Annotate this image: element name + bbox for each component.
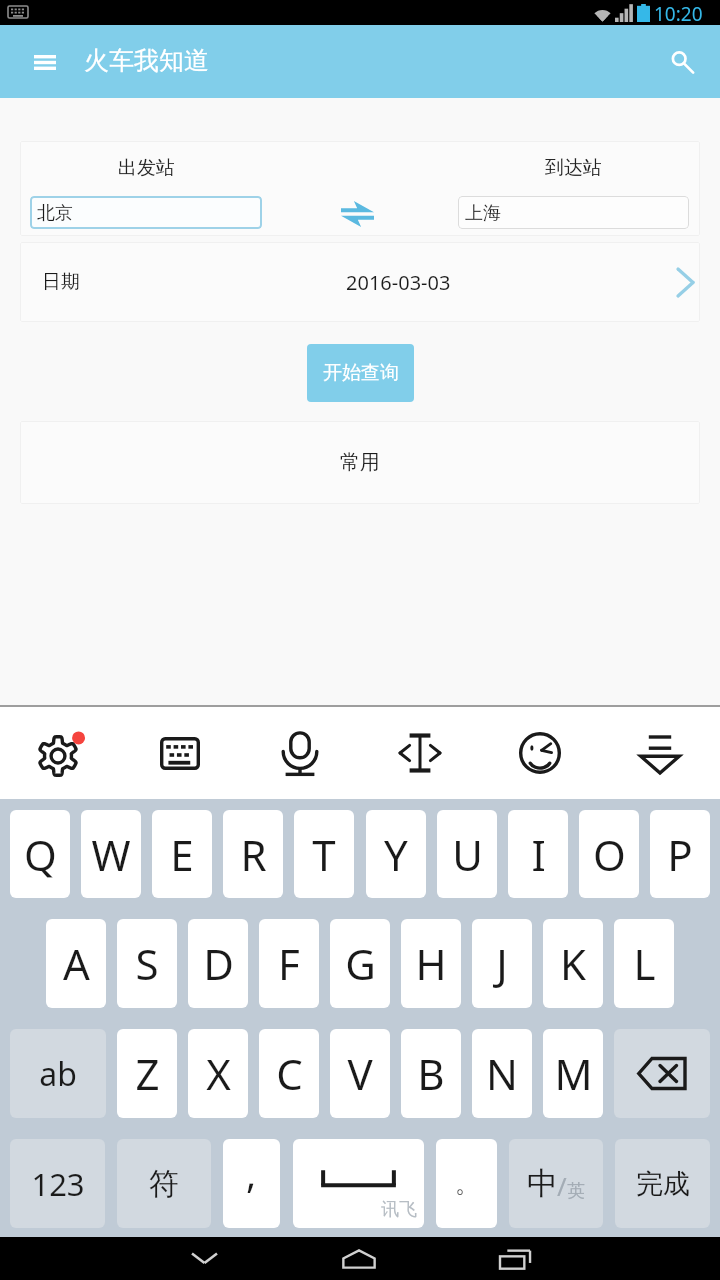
button[interactable]: F	[259, 919, 319, 1008]
staticText: Z	[135, 1045, 160, 1102]
button[interactable]: N	[472, 1029, 532, 1118]
button[interactable]: Voice input	[240, 707, 360, 799]
button[interactable]: 开始查询	[307, 344, 414, 402]
staticText: L	[633, 935, 656, 992]
button[interactable]: Home	[335, 1237, 383, 1280]
staticText: 常用	[340, 450, 380, 475]
staticText: 123	[31, 1163, 85, 1205]
button[interactable]: 完成	[615, 1139, 710, 1228]
button[interactable]: 上海	[458, 196, 689, 229]
staticText: F	[278, 935, 300, 992]
staticText: 日期	[42, 270, 80, 294]
button[interactable]: Cursor	[360, 707, 480, 799]
staticText: /	[557, 1168, 567, 1203]
button[interactable]: K	[543, 919, 603, 1008]
staticText: T	[312, 826, 336, 883]
staticText: 火车我知道	[84, 45, 209, 76]
staticText: 北京	[37, 202, 73, 225]
button[interactable]: 常用	[20, 421, 700, 504]
button[interactable]: Swap stations	[334, 191, 380, 236]
button[interactable]: O	[579, 810, 639, 898]
staticText: X	[206, 1045, 231, 1102]
button[interactable]: B	[401, 1029, 461, 1118]
button[interactable]: 北京	[30, 196, 262, 229]
staticText: S	[135, 935, 159, 992]
staticText: J	[496, 935, 508, 992]
staticText: 到达站	[545, 156, 602, 180]
button[interactable]	[614, 1029, 710, 1118]
staticText: Y	[384, 826, 408, 883]
button[interactable]: P	[650, 810, 710, 898]
button[interactable]: Menu	[21, 38, 69, 86]
staticText: U	[452, 826, 483, 883]
button[interactable]: C	[259, 1029, 319, 1118]
staticText: B	[417, 1045, 445, 1102]
staticText: 。	[455, 1169, 479, 1199]
staticText: N	[486, 1045, 518, 1102]
button[interactable]: Q	[10, 810, 70, 898]
button[interactable]: 123	[10, 1139, 105, 1228]
staticText: 讯飞	[381, 1198, 417, 1221]
staticText: V	[347, 1045, 373, 1102]
button[interactable]: 日期	[20, 242, 700, 322]
button[interactable]: 中	[509, 1139, 603, 1228]
staticText: 开始查询	[323, 361, 399, 385]
button[interactable]: S	[117, 919, 177, 1008]
staticText: M	[554, 1045, 593, 1102]
button[interactable]: Hide keyboard	[180, 1237, 228, 1280]
staticText: 中	[527, 1164, 558, 1203]
button[interactable]: W	[81, 810, 141, 898]
button[interactable]: Search	[658, 38, 706, 86]
button[interactable]: Z	[117, 1029, 177, 1118]
staticText: 出发站	[118, 156, 175, 180]
button[interactable]: Emoji	[480, 707, 600, 799]
staticText: E	[170, 826, 194, 883]
button[interactable]: Keyboard layout	[120, 707, 240, 799]
staticText: A	[63, 935, 90, 992]
button[interactable]: E	[152, 810, 212, 898]
staticText: O	[593, 826, 626, 883]
button[interactable]: Y	[366, 810, 426, 898]
button[interactable]: A	[46, 919, 106, 1008]
button[interactable]: Recent apps	[491, 1237, 539, 1280]
staticText: P	[667, 826, 693, 883]
button[interactable]: D	[188, 919, 248, 1008]
button[interactable]: U	[437, 810, 497, 898]
button[interactable]: Hide keyboard	[600, 707, 720, 799]
staticText: ab	[39, 1052, 77, 1096]
button[interactable]: 符	[117, 1139, 211, 1228]
staticText: H	[415, 935, 447, 992]
button[interactable]: M	[543, 1029, 603, 1118]
staticText: W	[91, 826, 131, 883]
button[interactable]: ab	[10, 1029, 106, 1118]
staticText: 10:20	[654, 1, 703, 26]
button[interactable]: R	[223, 810, 283, 898]
staticText: 英	[567, 1180, 585, 1203]
button[interactable]: J	[472, 919, 532, 1008]
button[interactable]: X	[188, 1029, 248, 1118]
staticText: 2016-03-03	[346, 269, 451, 296]
staticText: Q	[24, 826, 57, 883]
staticText: C	[276, 1045, 303, 1102]
staticText: 完成	[636, 1167, 690, 1201]
staticText: ,	[246, 1147, 257, 1199]
staticText: 上海	[465, 202, 501, 225]
button[interactable]: I	[508, 810, 568, 898]
button[interactable]: Settings	[0, 707, 120, 799]
staticText: R	[240, 826, 267, 883]
button[interactable]: L	[614, 919, 674, 1008]
button[interactable]: 。	[436, 1139, 497, 1228]
staticText: D	[203, 935, 234, 992]
button[interactable]: H	[401, 919, 461, 1008]
button[interactable]: 讯飞	[293, 1139, 424, 1228]
button[interactable]: T	[294, 810, 354, 898]
button[interactable]: ,	[223, 1139, 280, 1228]
staticText: I	[531, 826, 546, 883]
staticText: 符	[149, 1165, 179, 1203]
staticText: K	[560, 935, 586, 992]
staticText: G	[345, 935, 376, 992]
button[interactable]: G	[330, 919, 390, 1008]
button[interactable]: V	[330, 1029, 390, 1118]
